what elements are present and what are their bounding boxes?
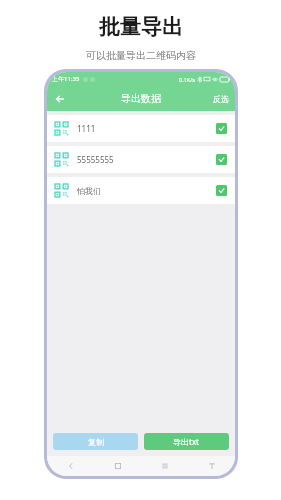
button[interactable]: 55555555 — [47, 146, 235, 173]
button[interactable]: 反选 — [210, 91, 232, 107]
staticText: 复制 — [88, 437, 104, 447]
staticText: 怕我们 — [77, 186, 101, 196]
staticText: 反选 — [213, 94, 229, 104]
staticText: 导出txt — [173, 436, 200, 447]
staticText: 批量导出 — [99, 14, 183, 40]
button[interactable]: 怕我们 — [47, 177, 235, 204]
button[interactable]: Selected — [216, 185, 227, 196]
button[interactable]: Assistant — [188, 456, 235, 476]
button[interactable]: Selected — [216, 154, 227, 165]
button[interactable]: Selected — [216, 123, 227, 134]
staticText: 可以批量导出二维码内容 — [86, 49, 196, 62]
button[interactable]: Back — [47, 456, 94, 476]
button[interactable]: Recents — [141, 456, 188, 476]
staticText: 55555555 — [77, 154, 114, 165]
button[interactable]: 复制 — [53, 433, 138, 450]
button[interactable]: 导出txt — [144, 433, 229, 450]
staticText: 1111 — [77, 123, 96, 134]
staticText: 上午11:35 — [52, 75, 80, 83]
button[interactable]: 1111 — [47, 115, 235, 142]
button[interactable]: Home — [94, 456, 141, 476]
button[interactable]: Back — [51, 90, 69, 108]
staticText: 导出数据 — [121, 92, 161, 105]
staticText: 0.1K/s — [179, 76, 195, 83]
